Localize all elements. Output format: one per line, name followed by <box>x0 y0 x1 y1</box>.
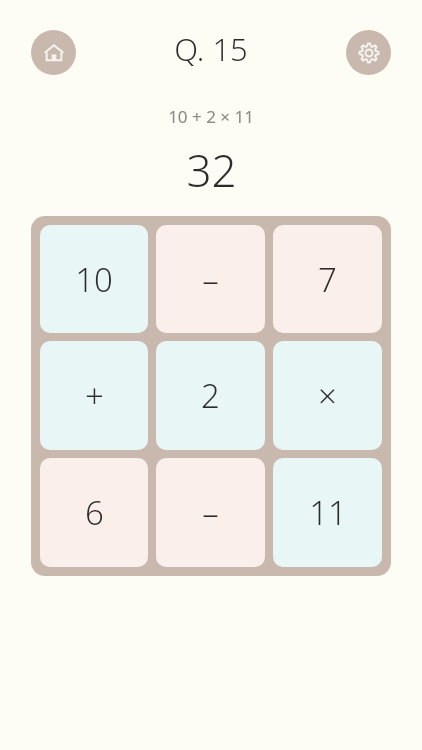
button[interactable]: – <box>156 458 265 567</box>
button[interactable]: Settings <box>346 30 391 75</box>
button[interactable]: 11 <box>273 458 382 567</box>
staticText: + <box>85 373 104 418</box>
staticText: 7 <box>318 257 337 302</box>
staticText: 10 + 2 × 11 <box>168 105 254 128</box>
button[interactable]: 10 <box>40 225 148 333</box>
staticText: × <box>318 373 337 418</box>
button[interactable]: 7 <box>273 225 382 333</box>
button[interactable]: – <box>156 225 265 333</box>
staticText: – <box>202 490 219 535</box>
button[interactable]: 2 <box>156 341 265 450</box>
staticText: 10 <box>75 257 113 302</box>
button[interactable]: + <box>40 341 148 450</box>
button[interactable]: 6 <box>40 458 148 567</box>
staticText: Q. 15 <box>174 28 248 70</box>
staticText: 11 <box>309 490 347 535</box>
staticText: 2 <box>201 373 220 418</box>
button[interactable]: × <box>273 341 382 450</box>
button[interactable]: Home <box>31 30 76 75</box>
staticText: 6 <box>85 490 104 535</box>
staticText: 32 <box>186 140 237 200</box>
staticText: – <box>202 257 219 302</box>
